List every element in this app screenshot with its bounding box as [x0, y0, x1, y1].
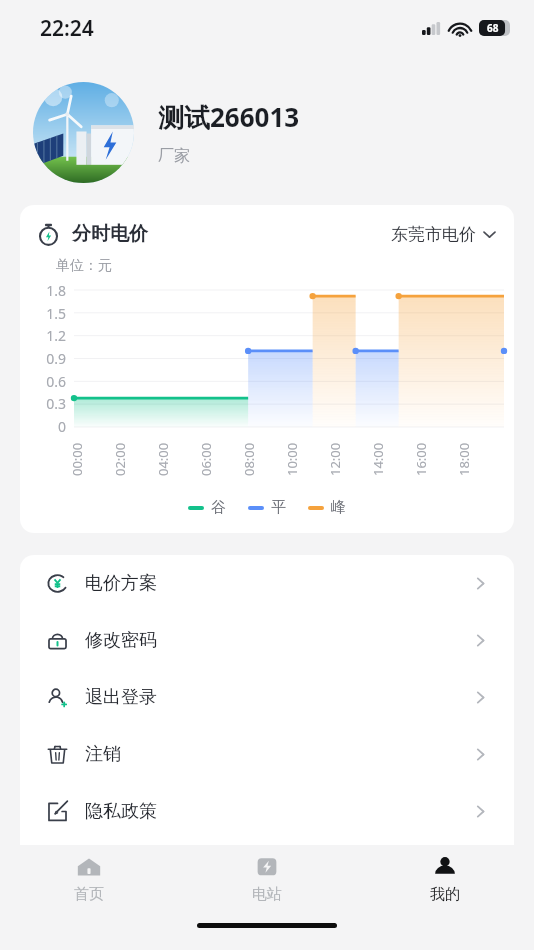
- button[interactable]: 电站: [178, 845, 356, 913]
- staticText: 峰: [331, 498, 346, 517]
- staticText: 10:00: [283, 442, 301, 476]
- button[interactable]: 东莞市电价: [391, 224, 496, 245]
- staticText: 02:00: [111, 442, 129, 476]
- button[interactable]: 电价方案: [20, 555, 514, 612]
- staticText: 东莞市电价: [391, 224, 476, 245]
- staticText: 1.2: [46, 326, 66, 345]
- button[interactable]: 我的: [356, 845, 534, 913]
- staticText: 14:00: [369, 442, 387, 476]
- button[interactable]: 隐私政策: [20, 783, 514, 840]
- staticText: 0.3: [46, 394, 66, 413]
- staticText: 修改密码: [85, 629, 157, 652]
- staticText: 分时电价: [72, 222, 148, 246]
- staticText: 厂家: [158, 146, 190, 166]
- staticText: 16:00: [412, 442, 430, 476]
- staticText: 00:00: [68, 442, 86, 476]
- staticText: 测试266013: [158, 99, 300, 135]
- staticText: 谷: [211, 498, 226, 517]
- staticText: 12:00: [326, 442, 344, 476]
- staticText: 0: [57, 417, 66, 436]
- staticText: 18:00: [455, 442, 473, 476]
- button[interactable]: 首页: [0, 845, 178, 913]
- staticText: 电站: [252, 885, 282, 904]
- button[interactable]: 修改密码: [20, 612, 514, 669]
- staticText: 注销: [85, 743, 121, 766]
- staticText: 06:00: [197, 442, 215, 476]
- staticText: 22:24: [40, 14, 94, 43]
- staticText: 平: [271, 498, 286, 517]
- staticText: 1.8: [46, 281, 66, 300]
- staticText: 1.5: [46, 304, 66, 323]
- button[interactable]: 注销: [20, 726, 514, 783]
- staticText: 0.9: [46, 349, 66, 368]
- staticText: 68: [487, 21, 499, 35]
- staticText: 首页: [74, 885, 104, 904]
- button[interactable]: 退出登录: [20, 669, 514, 726]
- staticText: 电价方案: [85, 572, 157, 595]
- staticText: 单位：元: [56, 257, 112, 275]
- staticText: 04:00: [154, 442, 172, 476]
- staticText: 隐私政策: [85, 800, 157, 823]
- staticText: 我的: [430, 885, 460, 904]
- staticText: 08:00: [240, 442, 258, 476]
- staticText: 退出登录: [85, 686, 157, 709]
- staticText: 0.6: [46, 372, 66, 391]
